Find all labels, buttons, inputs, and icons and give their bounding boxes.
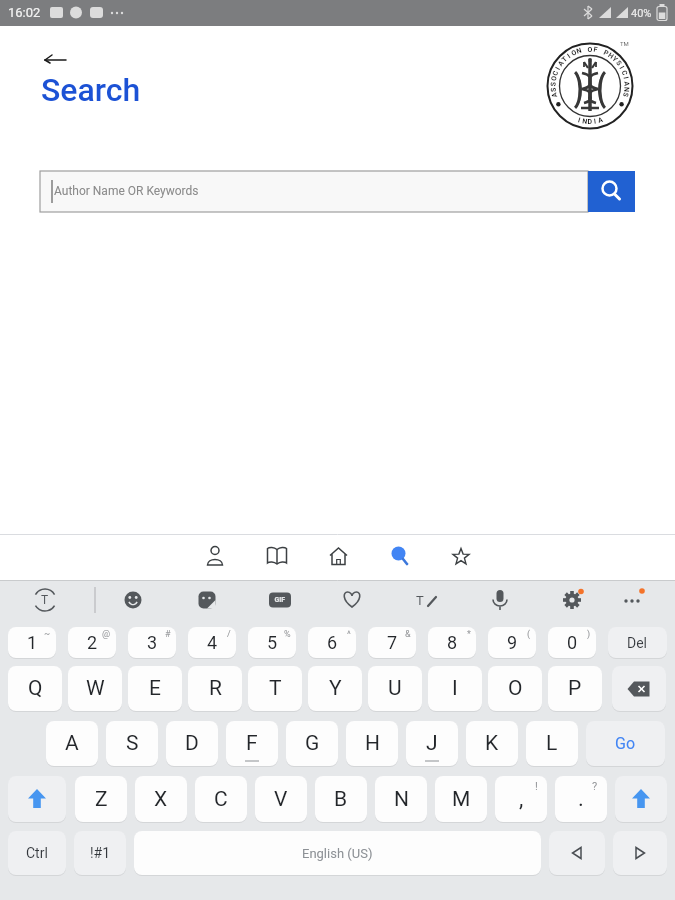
staticText: B bbox=[334, 787, 348, 812]
staticText: 40% bbox=[631, 7, 652, 20]
staticText: 5 bbox=[267, 632, 278, 653]
staticText: 3 bbox=[147, 632, 158, 653]
staticText: ? bbox=[592, 780, 598, 793]
staticText: I bbox=[452, 676, 458, 701]
staticText: E bbox=[149, 676, 161, 701]
staticText: & bbox=[405, 629, 411, 640]
staticText: F bbox=[246, 731, 258, 756]
staticText: / bbox=[227, 629, 231, 640]
staticText: H bbox=[365, 731, 380, 756]
staticText: T bbox=[269, 676, 282, 701]
staticText: W bbox=[86, 676, 105, 701]
staticText: G bbox=[305, 731, 320, 756]
staticText: 0 bbox=[567, 632, 578, 653]
staticText: Ctrl bbox=[26, 845, 48, 861]
staticText: 4 bbox=[207, 632, 218, 653]
staticText: D bbox=[185, 731, 199, 756]
staticText: 7 bbox=[387, 632, 398, 653]
staticText: Author Name OR Keywords bbox=[54, 184, 199, 198]
staticText: 8 bbox=[447, 632, 458, 653]
staticText: . bbox=[578, 786, 584, 812]
staticText: 2 bbox=[87, 632, 98, 653]
staticText: ! bbox=[535, 780, 538, 793]
staticText: ^ bbox=[347, 629, 351, 640]
staticText: * bbox=[467, 629, 471, 640]
staticText: @ bbox=[102, 629, 111, 640]
staticText: S bbox=[126, 731, 139, 756]
staticText: R bbox=[209, 676, 222, 701]
staticText: # bbox=[165, 629, 171, 640]
staticText: 1 bbox=[27, 632, 38, 653]
staticText: N bbox=[394, 787, 409, 812]
staticText: 6 bbox=[327, 632, 338, 653]
staticText: Go bbox=[615, 734, 636, 753]
staticText: TM bbox=[620, 40, 629, 47]
staticText: Z bbox=[95, 787, 108, 812]
staticText: L bbox=[546, 731, 558, 756]
staticText: Del bbox=[627, 635, 648, 651]
staticText: % bbox=[284, 629, 291, 640]
staticText: U bbox=[388, 676, 402, 701]
staticText: 16:02 bbox=[8, 5, 41, 20]
staticText: ~ bbox=[44, 629, 51, 640]
staticText: A bbox=[65, 731, 79, 756]
staticText: X bbox=[154, 787, 168, 812]
staticText: ) bbox=[587, 629, 591, 640]
staticText: English (US) bbox=[302, 846, 373, 861]
staticText: , bbox=[519, 786, 524, 812]
staticText: Search bbox=[41, 71, 141, 109]
staticText: Q bbox=[28, 676, 43, 701]
staticText: M bbox=[452, 787, 471, 812]
staticText: Y bbox=[329, 676, 342, 701]
staticText: J bbox=[426, 731, 438, 756]
staticText: C bbox=[214, 787, 228, 812]
staticText: O bbox=[508, 676, 523, 701]
staticText: !#1 bbox=[90, 845, 111, 861]
staticText: K bbox=[485, 731, 499, 756]
staticText: ( bbox=[527, 629, 531, 640]
staticText: V bbox=[274, 787, 288, 812]
staticText: P bbox=[568, 676, 582, 701]
staticText: 9 bbox=[507, 632, 518, 653]
